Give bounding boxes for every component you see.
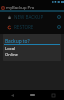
- button[interactable]: RESTORE: [0, 22, 64, 32]
- button[interactable]: NEW BACKUP: [0, 12, 64, 22]
- button[interactable]: myBackup Pro: [0, 4, 64, 12]
- button[interactable]: Home: [23, 90, 41, 100]
- staticText: Online: [5, 52, 18, 58]
- staticText: Local: [5, 46, 16, 52]
- button[interactable]: Back: [3, 90, 21, 100]
- button[interactable]: Options: [55, 13, 63, 21]
- staticText: myBackup Pro: [6, 5, 35, 11]
- button[interactable]: Local: [3, 46, 61, 52]
- button[interactable]: Online: [3, 52, 61, 58]
- button[interactable]: Recent apps: [44, 90, 62, 100]
- staticText: NEW BACKUP: [14, 14, 44, 20]
- button[interactable]: Options: [55, 23, 63, 31]
- staticText: RESTORE: [14, 24, 34, 30]
- staticText: Backup to?: [5, 38, 30, 45]
